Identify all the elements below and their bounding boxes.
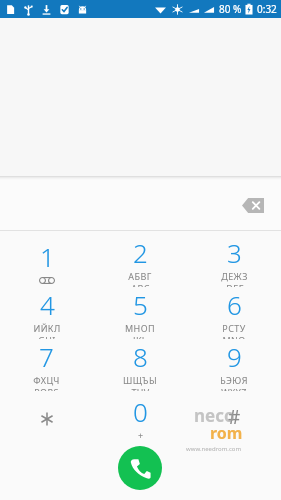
staticText: 3 <box>227 235 242 270</box>
staticText: DEF <box>226 282 244 287</box>
staticText: 4 <box>40 287 55 322</box>
staticText: 9 <box>227 339 242 374</box>
staticText: 6 <box>227 287 242 322</box>
button[interactable]: 5 <box>93 287 187 339</box>
button[interactable]: 0 <box>93 391 187 443</box>
button[interactable]: Call <box>118 446 162 490</box>
staticText: АБВГ <box>128 270 152 282</box>
staticText: 2 <box>133 235 148 270</box>
staticText: MNO <box>222 334 246 339</box>
staticText: 5 <box>133 287 148 322</box>
staticText: 0 <box>133 394 148 429</box>
staticText: PQRS <box>34 386 59 391</box>
button[interactable]: 4 <box>0 287 93 339</box>
staticText: www.needrom.com <box>186 445 242 453</box>
staticText: МНОП <box>125 322 155 334</box>
button[interactable] <box>0 391 93 443</box>
staticText: 1 <box>40 239 55 274</box>
button[interactable]: 2 <box>93 235 187 287</box>
button[interactable]: 8 <box>93 339 187 391</box>
staticText: 7 <box>39 339 54 374</box>
staticText: WXYZ <box>221 386 247 391</box>
staticText: ИЙКЛ <box>33 322 61 334</box>
staticText: 0:32 <box>257 2 277 16</box>
staticText: ШЩЪЫ <box>123 374 157 386</box>
staticText: GHI <box>38 334 56 339</box>
staticText: TUV <box>131 386 150 391</box>
staticText: neco <box>194 404 235 427</box>
button[interactable]: 6 <box>187 287 281 339</box>
staticText: + <box>138 429 144 441</box>
staticText: ФХЦЧ <box>33 374 60 386</box>
staticText: # <box>228 404 241 430</box>
button[interactable]: 7 <box>0 339 93 391</box>
staticText: 8 <box>133 339 148 374</box>
button[interactable]: 9 <box>187 339 281 391</box>
staticText: РСТУ <box>222 322 246 334</box>
staticText: rom <box>210 422 243 444</box>
button[interactable]: 1 <box>0 235 93 287</box>
staticText: ЬЭЮЯ <box>220 374 248 386</box>
staticText: ABC <box>131 282 150 287</box>
staticText: ДЕЖЗ <box>221 270 248 282</box>
button[interactable]: # <box>187 391 281 443</box>
button[interactable]: 3 <box>187 235 281 287</box>
staticText: 80 % <box>219 2 242 16</box>
staticText: JKL <box>133 334 147 339</box>
button[interactable]: Backspace <box>235 187 271 223</box>
